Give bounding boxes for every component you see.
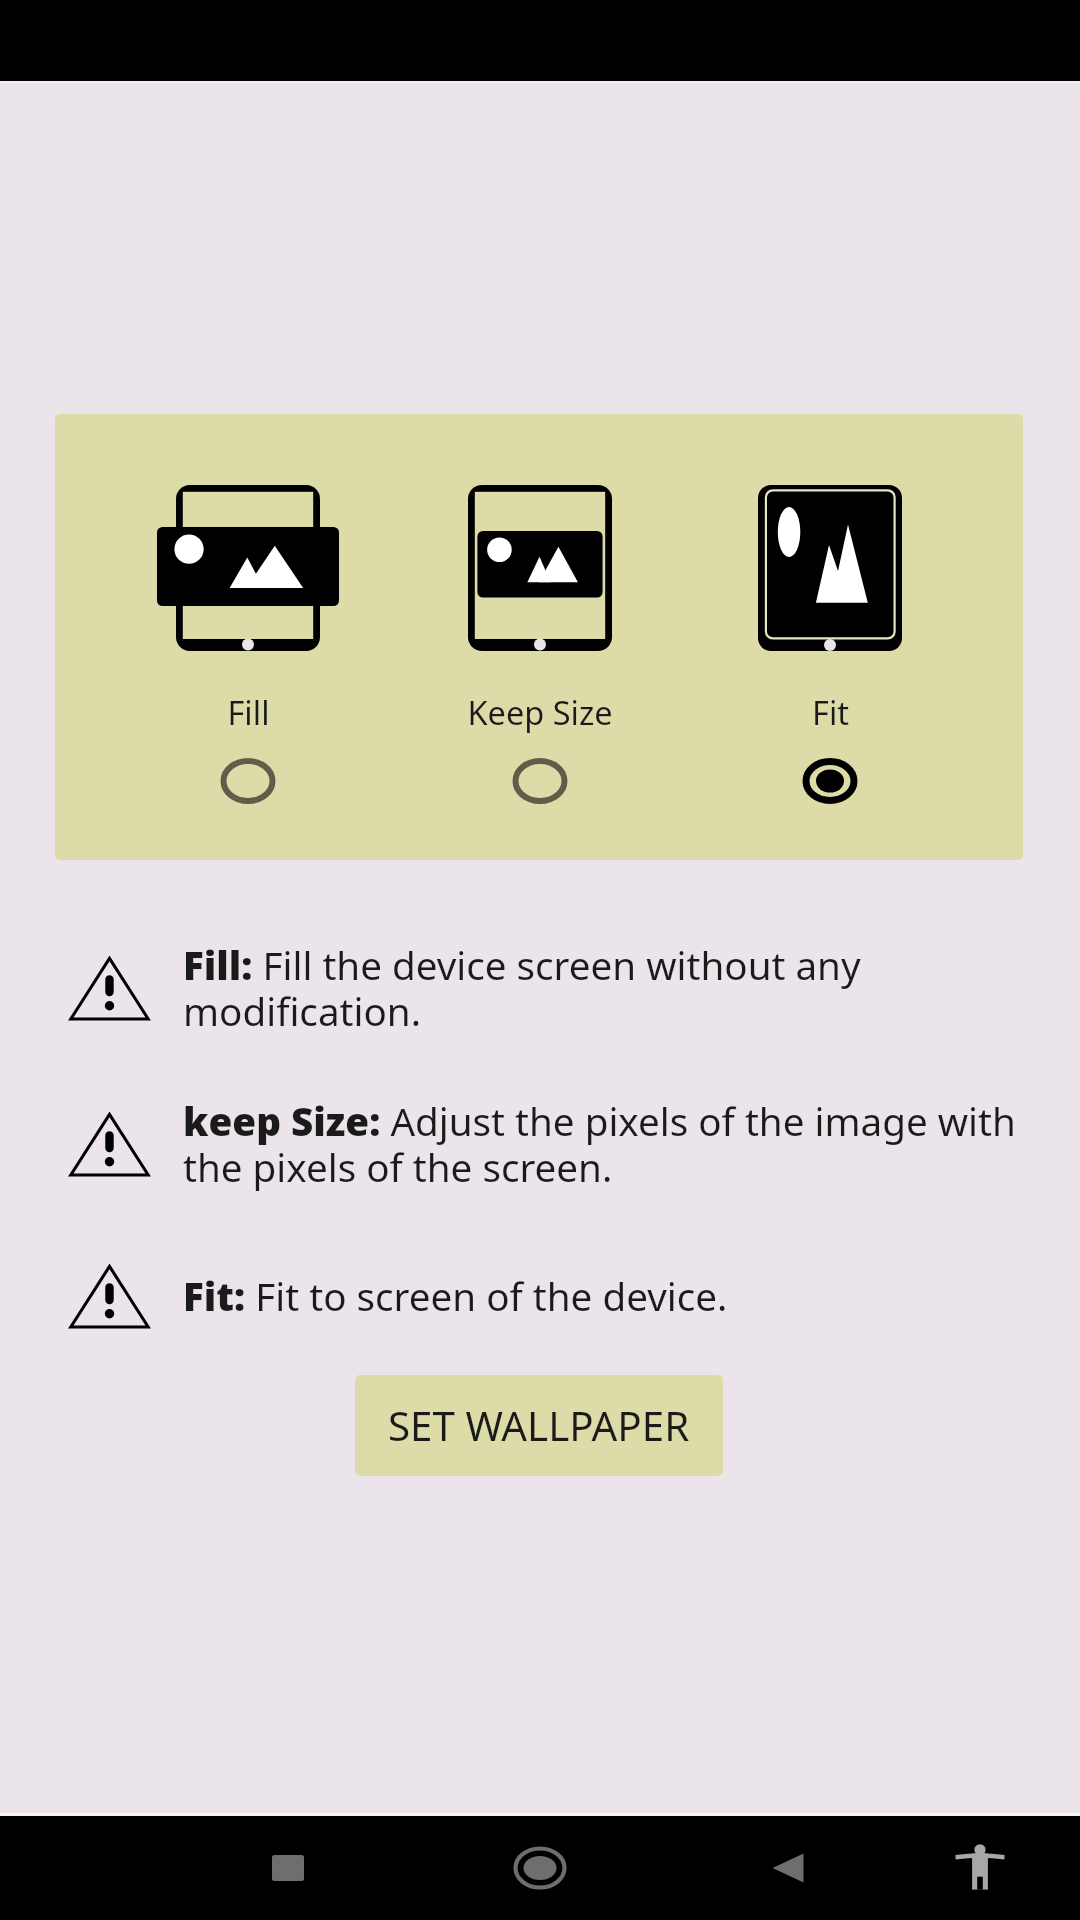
- button[interactable]: Accessibility: [928, 1816, 1032, 1920]
- button[interactable]: Recents: [236, 1816, 340, 1920]
- button[interactable]: Keep Size: [430, 414, 650, 860]
- staticText: SET WALLPAPER: [388, 1398, 690, 1453]
- staticText: Fit: Fit to screen of the device.: [183, 1270, 728, 1323]
- button[interactable]: SET WALLPAPER: [355, 1375, 723, 1476]
- button[interactable]: Home: [488, 1816, 592, 1920]
- staticText: Fit: [812, 690, 849, 734]
- staticText: Fill: [227, 690, 270, 734]
- button[interactable]: Fill: [138, 414, 358, 860]
- button[interactable]: Back: [736, 1816, 840, 1920]
- staticText: Fill: Fill the device screen without any…: [183, 939, 1040, 1037]
- button[interactable]: Fit: [720, 414, 940, 860]
- staticText: Keep Size: [467, 690, 613, 734]
- staticText: keep Size: Adjust the pixels of the imag…: [183, 1095, 1040, 1193]
